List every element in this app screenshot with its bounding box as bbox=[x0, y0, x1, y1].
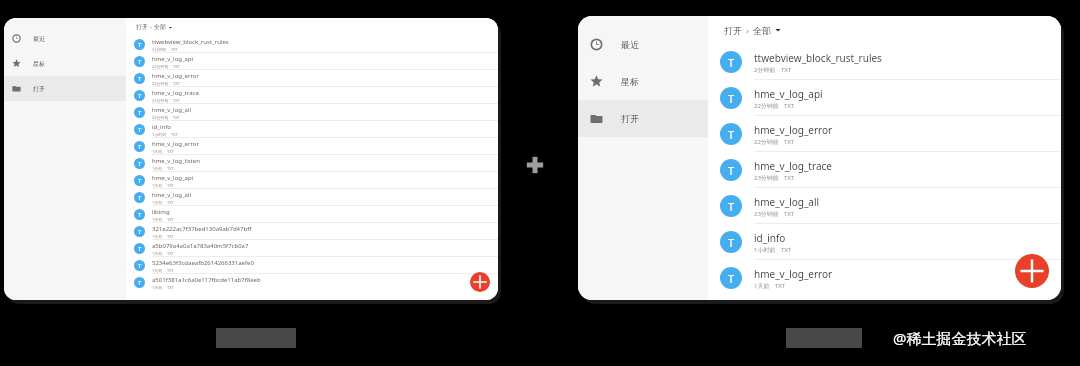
staticText: T bbox=[138, 58, 142, 66]
button[interactable]: Add bbox=[470, 272, 490, 292]
staticText: T bbox=[138, 279, 142, 287]
button[interactable]: T bbox=[708, 260, 1061, 296]
staticText: 5234e63f3cdaeafb2614266331aefe0 bbox=[152, 259, 254, 267]
staticText: T bbox=[138, 75, 142, 83]
staticText: TXT bbox=[167, 183, 174, 188]
button[interactable]: T bbox=[708, 152, 1061, 188]
button[interactable]: T bbox=[708, 44, 1061, 80]
staticText: 2分钟前 bbox=[152, 47, 167, 52]
staticText: T bbox=[138, 160, 142, 168]
button[interactable]: T bbox=[126, 274, 498, 291]
button[interactable]: 全部 bbox=[753, 25, 771, 36]
staticText: 2分钟前 bbox=[754, 66, 776, 74]
staticText: 1天前 bbox=[152, 268, 163, 273]
button[interactable]: 打开 bbox=[578, 100, 708, 137]
staticText: 22分钟前 bbox=[152, 64, 169, 69]
button[interactable]: 最近 bbox=[578, 26, 708, 63]
staticText: T bbox=[728, 271, 735, 286]
button[interactable]: T bbox=[126, 155, 498, 172]
button[interactable]: 全部 bbox=[154, 23, 166, 31]
staticText: hme_v_log_all bbox=[754, 195, 820, 209]
staticText: TXT bbox=[781, 66, 792, 74]
staticText: hme_v_log_error bbox=[152, 72, 199, 80]
staticText: T bbox=[138, 41, 142, 49]
button[interactable]: T bbox=[126, 104, 498, 121]
button[interactable]: T bbox=[708, 80, 1061, 116]
button[interactable]: T bbox=[708, 224, 1061, 260]
staticText: TXT bbox=[173, 81, 180, 86]
button[interactable]: T bbox=[126, 138, 498, 155]
button[interactable]: T bbox=[126, 240, 498, 257]
staticText: 23分钟前 bbox=[754, 174, 779, 182]
button[interactable]: T bbox=[126, 257, 498, 274]
staticText: ttwebview_block_rust_rules bbox=[152, 38, 229, 46]
staticText: hme_v_log_error bbox=[152, 140, 199, 148]
staticText: 星标 bbox=[33, 60, 45, 68]
staticText: 23分钟前 bbox=[754, 210, 779, 218]
button[interactable]: T bbox=[126, 36, 498, 53]
staticText: TXT bbox=[167, 234, 174, 239]
button[interactable]: 打开 bbox=[4, 76, 126, 101]
staticText: 1小时前 bbox=[754, 246, 776, 254]
staticText: 1天前 bbox=[152, 234, 163, 239]
staticText: TXT bbox=[784, 102, 795, 110]
staticText: T bbox=[138, 228, 142, 236]
staticText: 321e222ac7f37bed130a9ab7d47bff bbox=[152, 225, 252, 233]
staticText: T bbox=[728, 55, 735, 70]
staticText: 1小时前 bbox=[152, 132, 167, 137]
staticText: TXT bbox=[784, 174, 795, 182]
staticText: TXT bbox=[775, 282, 786, 290]
button[interactable]: T bbox=[126, 189, 498, 206]
staticText: 打开 bbox=[136, 23, 148, 31]
staticText: T bbox=[138, 126, 142, 134]
staticText: libimg bbox=[152, 208, 170, 216]
button[interactable]: T bbox=[126, 206, 498, 223]
button[interactable]: T bbox=[126, 172, 498, 189]
staticText: 打开 bbox=[33, 85, 45, 93]
button[interactable]: Filter bbox=[774, 26, 782, 34]
button[interactable]: Add bbox=[1015, 254, 1049, 288]
button[interactable]: T bbox=[126, 223, 498, 240]
staticText: TXT bbox=[171, 47, 178, 52]
button[interactable]: T bbox=[126, 53, 498, 70]
staticText: 1天前 bbox=[152, 200, 163, 205]
staticText: T bbox=[728, 91, 735, 106]
staticText: 1天前 bbox=[754, 282, 770, 290]
staticText: 最近 bbox=[621, 39, 639, 50]
staticText: TXT bbox=[167, 251, 174, 256]
staticText: T bbox=[728, 199, 735, 214]
button[interactable]: T bbox=[708, 116, 1061, 152]
button[interactable]: T bbox=[126, 70, 498, 87]
staticText: id_info bbox=[754, 231, 786, 245]
staticText: TXT bbox=[784, 138, 795, 146]
button[interactable]: 星标 bbox=[578, 63, 708, 100]
button[interactable]: T bbox=[126, 121, 498, 138]
staticText: T bbox=[138, 211, 142, 219]
button[interactable]: Filter bbox=[168, 25, 173, 30]
staticText: TXT bbox=[173, 98, 180, 103]
staticText: TXT bbox=[167, 268, 174, 273]
button[interactable]: 最近 bbox=[4, 26, 126, 51]
button[interactable]: 打开 bbox=[724, 25, 742, 36]
staticText: @稀土掘金技术社区 bbox=[893, 328, 1027, 348]
staticText: 1天前 bbox=[152, 183, 163, 188]
button[interactable]: T bbox=[126, 87, 498, 104]
staticText: 星标 bbox=[621, 76, 639, 87]
staticText: T bbox=[138, 262, 142, 270]
button[interactable]: 星标 bbox=[4, 51, 126, 76]
staticText: 1天前 bbox=[152, 149, 163, 154]
staticText: 23分钟前 bbox=[152, 98, 169, 103]
staticText: a501f381a1c6a0e117fbcde11ab7f8eeb bbox=[152, 276, 261, 284]
staticText: TXT bbox=[167, 217, 174, 222]
staticText: TXT bbox=[784, 210, 795, 218]
staticText: TXT bbox=[173, 115, 180, 120]
staticText: TXT bbox=[167, 166, 174, 171]
button[interactable]: T bbox=[708, 188, 1061, 224]
staticText: TXT bbox=[167, 200, 174, 205]
staticText: T bbox=[138, 245, 142, 253]
staticText: hme_v_log_error bbox=[754, 267, 833, 281]
staticText: 打开 bbox=[621, 113, 639, 124]
button[interactable]: 打开 bbox=[136, 23, 148, 31]
staticText: T bbox=[728, 235, 735, 250]
staticText: 1天前 bbox=[152, 217, 163, 222]
